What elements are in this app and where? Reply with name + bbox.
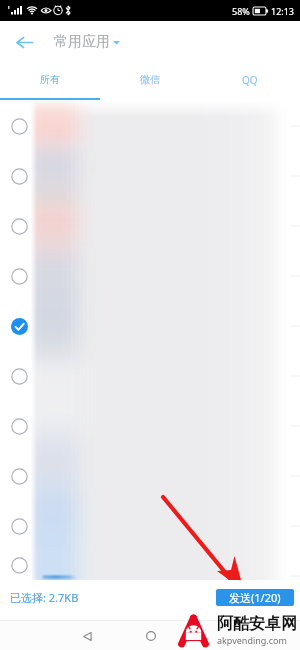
button[interactable]	[0, 351, 300, 401]
staticText: 阿酷安卓网	[217, 614, 297, 634]
button[interactable]: 发送(1/20)	[216, 589, 294, 606]
button[interactable]	[0, 301, 300, 351]
button[interactable]	[0, 101, 300, 151]
button[interactable]	[0, 551, 300, 580]
button[interactable]	[0, 151, 300, 201]
button[interactable]	[0, 201, 300, 251]
button[interactable]: Back	[4, 22, 44, 62]
staticText: 微信	[140, 73, 160, 86]
staticText: 58%	[232, 5, 250, 17]
staticText: 常用应用	[54, 33, 110, 51]
staticText: 12:13	[271, 5, 295, 17]
staticText: 发送(1/20)	[229, 590, 281, 605]
button[interactable]: QQ	[200, 63, 300, 98]
button[interactable]	[0, 501, 300, 551]
staticText: akpvending.com	[217, 634, 287, 646]
button[interactable]: 所有	[0, 63, 100, 98]
button[interactable]	[0, 401, 300, 451]
button[interactable]: Home	[138, 623, 164, 649]
button[interactable]: 微信	[100, 63, 200, 98]
button[interactable]: 常用应用	[54, 33, 120, 51]
staticText: 所有	[40, 73, 60, 86]
button[interactable]: Back	[74, 623, 100, 649]
staticText: QQ	[242, 73, 258, 87]
button[interactable]	[0, 451, 300, 501]
button[interactable]	[0, 251, 300, 301]
staticText: 已选择: 2.7KB	[10, 590, 79, 605]
